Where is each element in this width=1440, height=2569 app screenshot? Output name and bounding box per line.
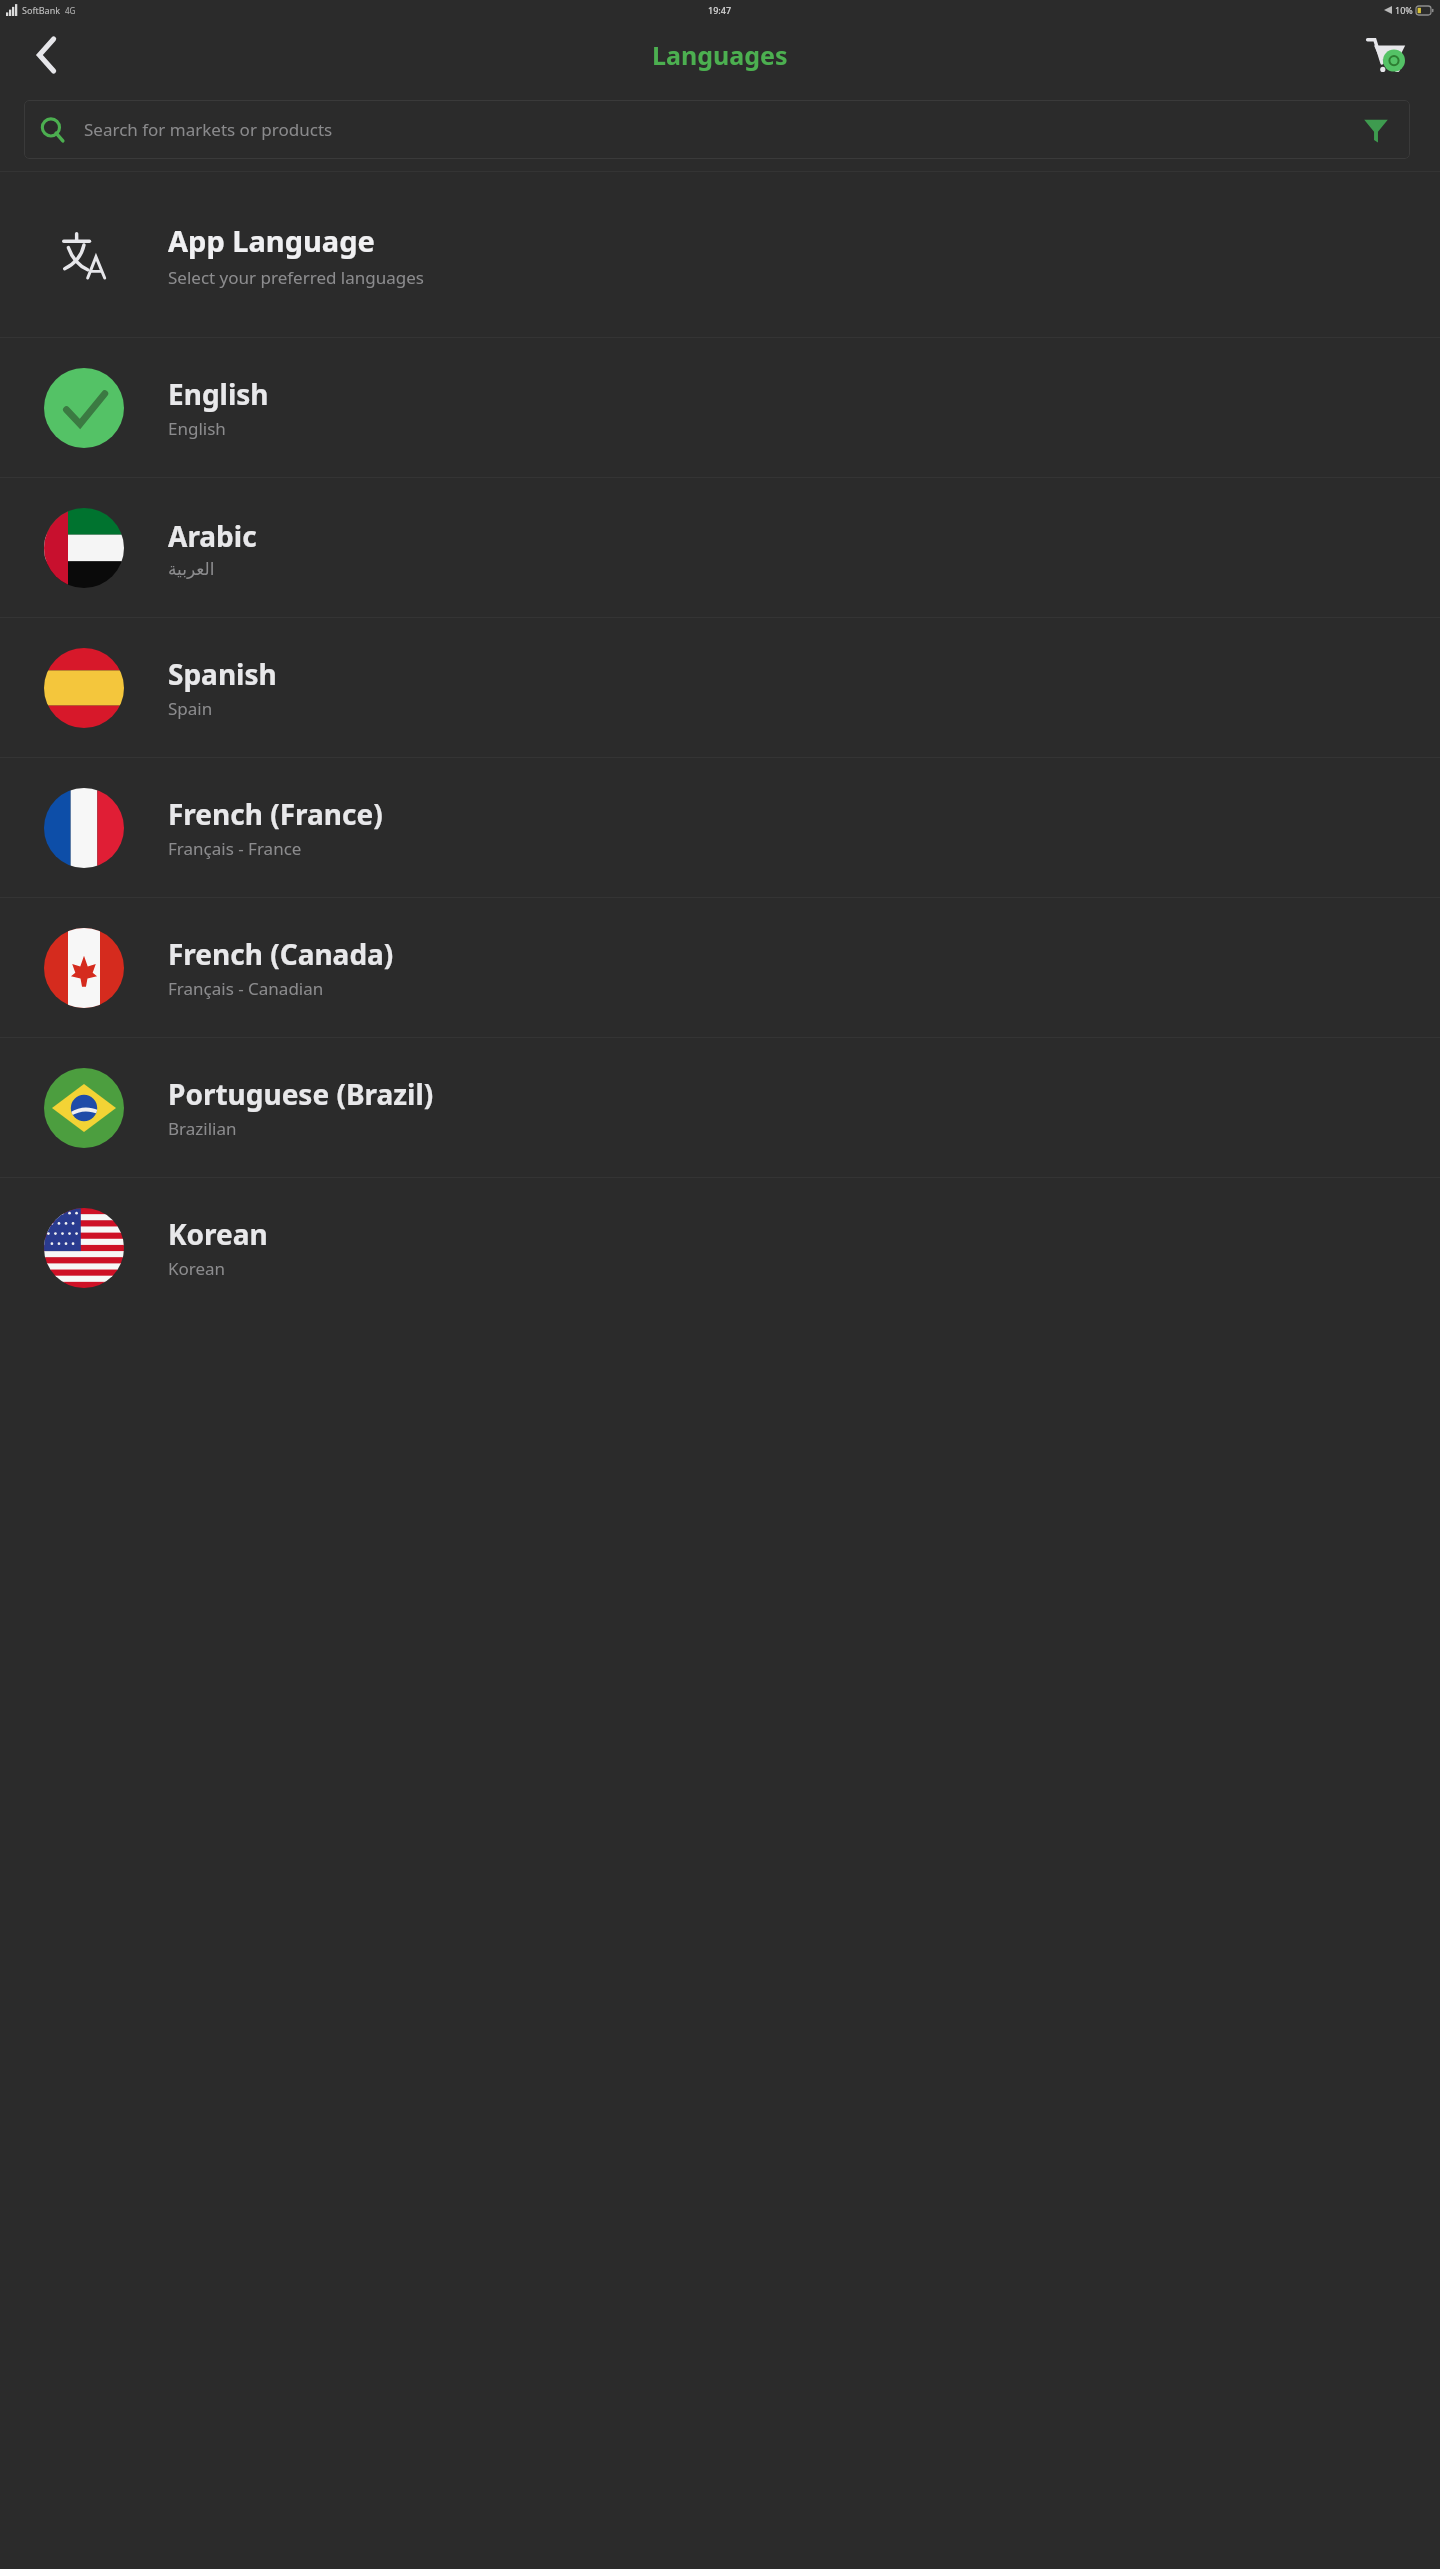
button[interactable]: Back [20, 29, 72, 81]
button[interactable]: Spanish [0, 618, 1440, 757]
staticText: 4G [65, 5, 76, 16]
staticText: Arabic [168, 517, 257, 555]
button[interactable]: Arabic [0, 478, 1440, 617]
staticText: Spain [168, 697, 213, 720]
button[interactable]: Filter [1358, 112, 1394, 148]
staticText: SoftBank [22, 4, 60, 16]
staticText: 10% [1395, 4, 1413, 16]
staticText: Korean [168, 1215, 268, 1253]
button[interactable]: App Language [0, 172, 1440, 337]
staticText: English [168, 417, 226, 440]
button[interactable]: Search for markets or products [24, 100, 1410, 159]
button[interactable]: Portuguese (Brazil) [0, 1038, 1440, 1177]
button[interactable]: French (France) [0, 758, 1440, 897]
button[interactable]: Cart [1358, 27, 1414, 83]
button[interactable]: Korean [0, 1178, 1440, 1317]
staticText: Search for markets or products [84, 118, 1358, 141]
staticText: English [168, 375, 269, 413]
staticText: Brazilian [168, 1117, 237, 1140]
staticText: Select your preferred languages [168, 266, 424, 289]
button[interactable]: English [0, 338, 1440, 477]
staticText: Français - France [168, 837, 302, 860]
staticText: French (France) [168, 795, 383, 833]
staticText: Portuguese (Brazil) [168, 1075, 434, 1113]
staticText: French (Canada) [168, 935, 394, 973]
staticText: العربية [168, 559, 215, 579]
staticText: Spanish [168, 655, 277, 693]
staticText: Languages [652, 38, 788, 72]
button[interactable]: French (Canada) [0, 898, 1440, 1037]
staticText: Français - Canadian [168, 977, 324, 1000]
staticText: App Language [168, 221, 375, 260]
staticText: Korean [168, 1257, 226, 1280]
staticText: 19:47 [708, 4, 732, 16]
